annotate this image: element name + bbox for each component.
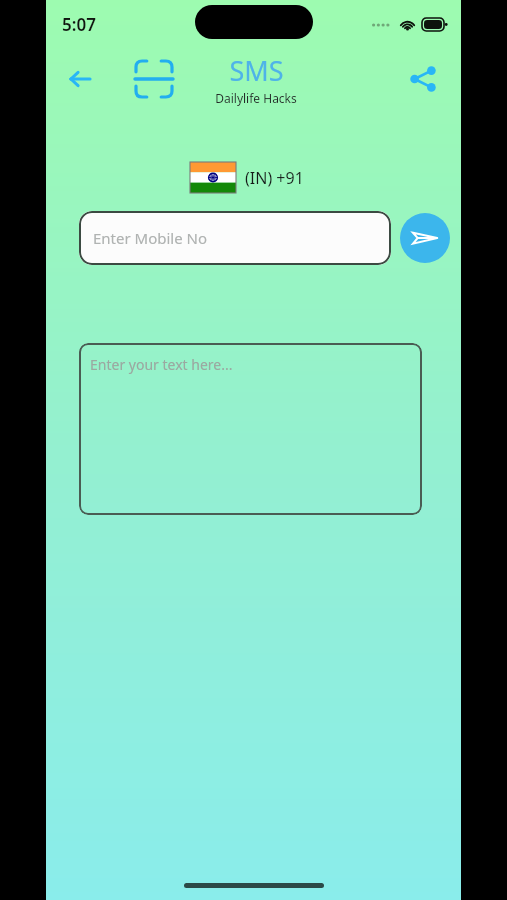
button[interactable]: Share — [401, 57, 445, 101]
button[interactable]: Send — [400, 213, 450, 263]
staticText: Dailylife Hacks — [215, 90, 297, 106]
staticText: SMS — [229, 52, 284, 89]
staticText: 5:07 — [62, 13, 96, 36]
button[interactable]: Enter Mobile No — [79, 211, 391, 265]
button[interactable]: Enter your text here... — [79, 343, 422, 515]
button[interactable]: Scan — [131, 56, 177, 102]
staticText: Enter your text here... — [90, 355, 233, 374]
staticText: Enter Mobile No — [93, 228, 208, 248]
button[interactable]: Back — [60, 59, 100, 99]
button[interactable]: (IN) +91 — [190, 162, 304, 193]
staticText: (IN) +91 — [245, 167, 304, 189]
